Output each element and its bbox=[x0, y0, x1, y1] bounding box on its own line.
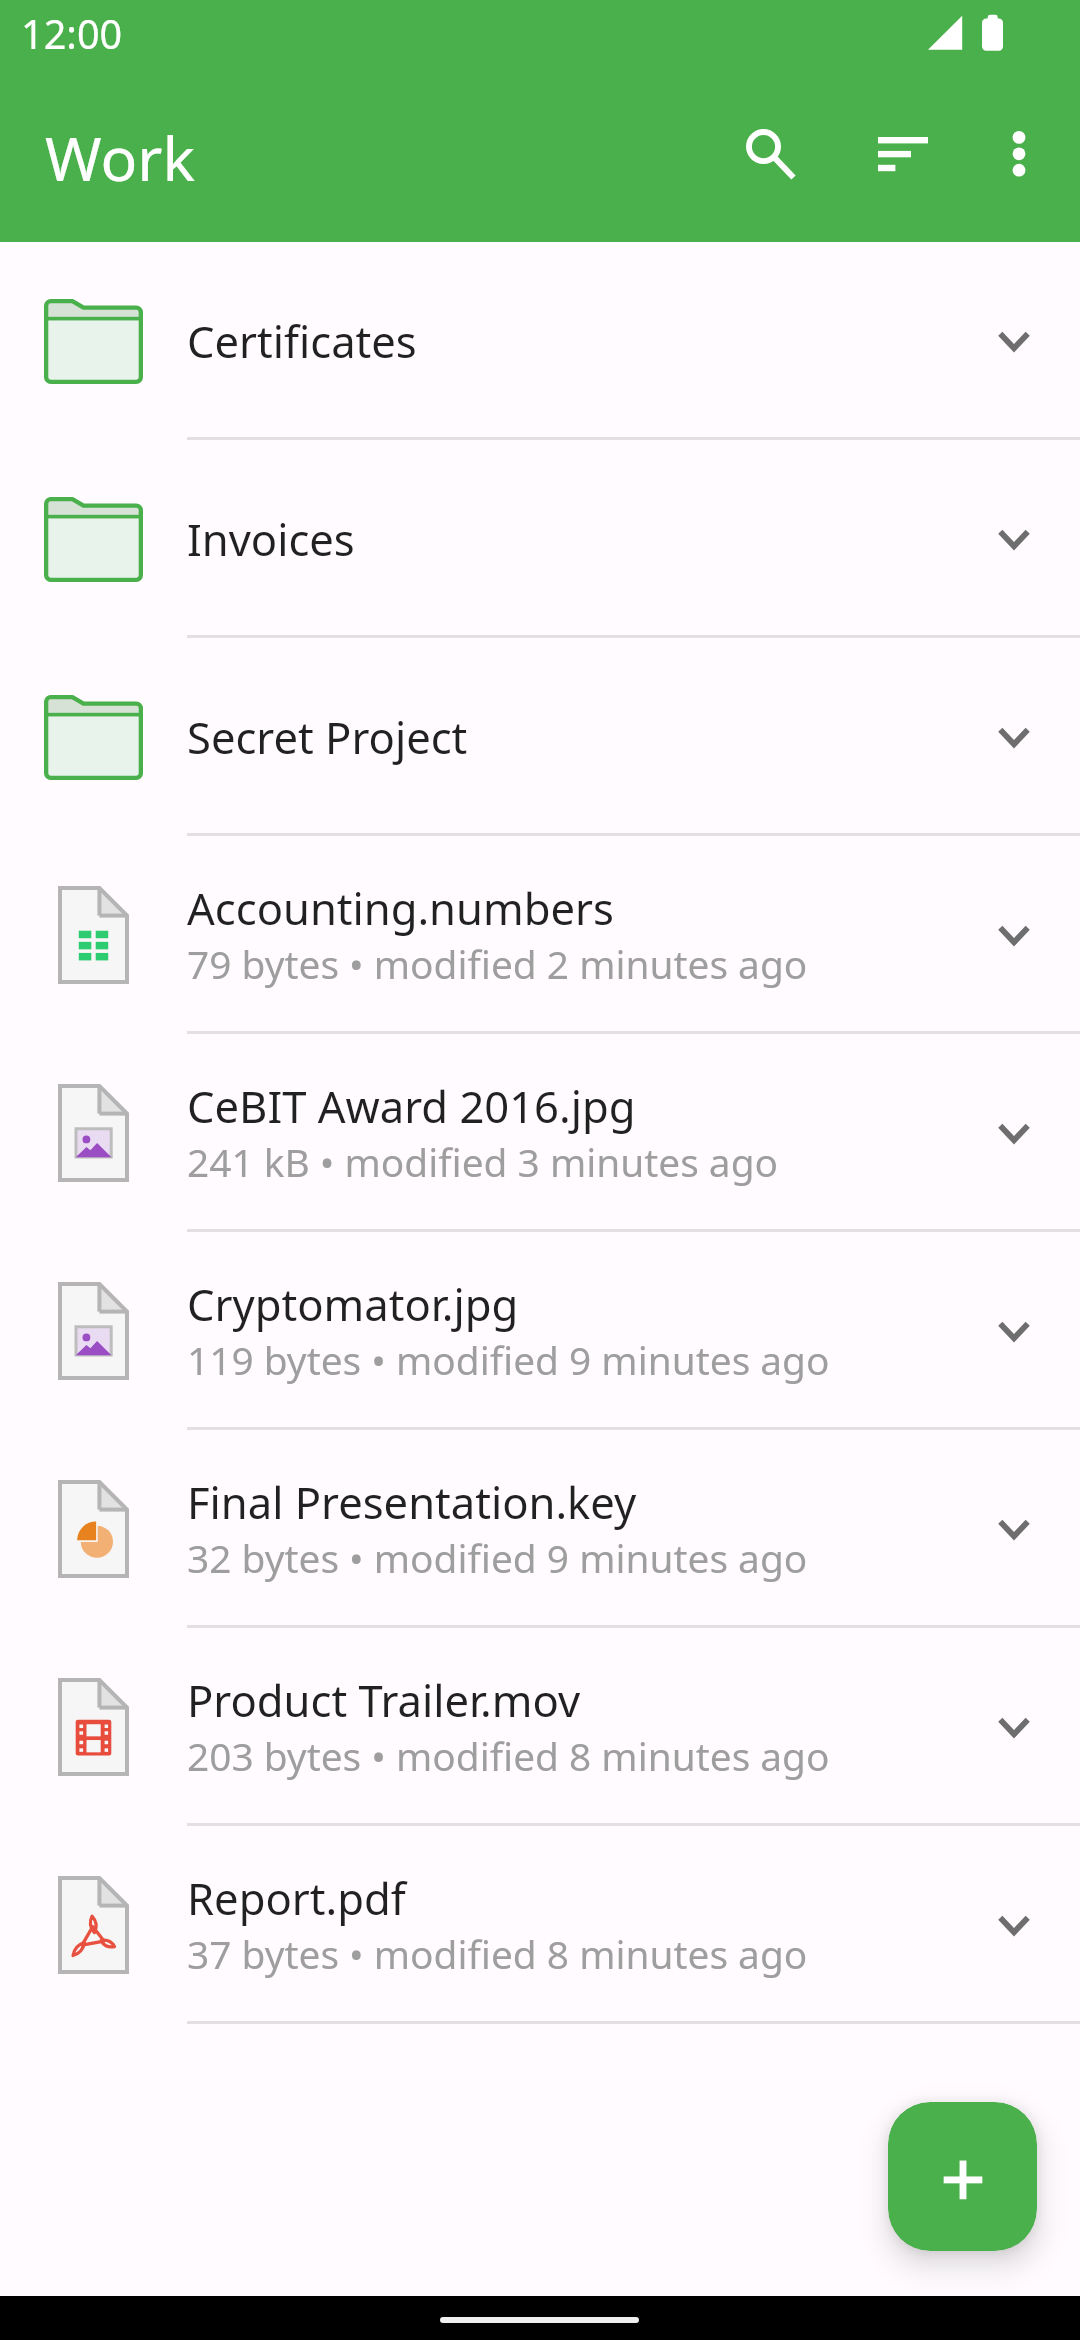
staticText: 32 bytes • modified 9 minutes ago bbox=[187, 1531, 808, 1584]
staticText: Work bbox=[45, 116, 195, 199]
staticText: 79 bytes • modified 2 minutes ago bbox=[187, 937, 808, 990]
staticText: Product Trailer.mov bbox=[187, 1670, 581, 1729]
staticText: Certificates bbox=[187, 311, 954, 370]
staticText: 37 bytes • modified 8 minutes ago bbox=[187, 1927, 808, 1980]
button[interactable]: Certificates bbox=[0, 242, 1080, 440]
staticText: Report.pdf bbox=[187, 1868, 406, 1927]
button[interactable]: Report.pdf bbox=[0, 1826, 1080, 2024]
button[interactable]: Show actions bbox=[954, 1232, 1074, 1430]
button[interactable]: Final Presentation.key bbox=[0, 1430, 1080, 1628]
button[interactable]: Show actions bbox=[954, 242, 1074, 440]
button[interactable]: Show actions bbox=[954, 1628, 1074, 1826]
staticText: 203 bytes • modified 8 minutes ago bbox=[187, 1729, 830, 1782]
button[interactable]: Secret Project bbox=[0, 638, 1080, 836]
button[interactable]: Show actions bbox=[954, 1430, 1074, 1628]
button[interactable]: Product Trailer.mov bbox=[0, 1628, 1080, 1826]
button[interactable]: Show actions bbox=[954, 1034, 1074, 1232]
staticText: Secret Project bbox=[187, 707, 954, 766]
staticText: Final Presentation.key bbox=[187, 1472, 637, 1531]
button[interactable]: Accounting.numbers bbox=[0, 836, 1080, 1034]
button[interactable]: Search bbox=[698, 72, 842, 240]
staticText: Cryptomator.jpg bbox=[187, 1274, 519, 1333]
button[interactable]: Cryptomator.jpg bbox=[0, 1232, 1080, 1430]
staticText: Invoices bbox=[187, 509, 954, 568]
button[interactable]: CeBIT Award 2016.jpg bbox=[0, 1034, 1080, 1232]
button[interactable]: Show actions bbox=[954, 440, 1074, 638]
staticText: 12:00 bbox=[21, 7, 123, 61]
button[interactable]: Sort bbox=[831, 72, 975, 240]
staticText: 241 kB • modified 3 minutes ago bbox=[187, 1135, 779, 1188]
button[interactable]: Show actions bbox=[954, 836, 1074, 1034]
button[interactable]: More options bbox=[965, 72, 1073, 240]
staticText: CeBIT Award 2016.jpg bbox=[187, 1076, 636, 1135]
staticText: Accounting.numbers bbox=[187, 878, 614, 937]
button[interactable]: Show actions bbox=[954, 638, 1074, 836]
button[interactable]: Add bbox=[888, 2102, 1037, 2251]
button[interactable]: Show actions bbox=[954, 1826, 1074, 2024]
staticText: 119 bytes • modified 9 minutes ago bbox=[187, 1333, 830, 1386]
button[interactable]: Invoices bbox=[0, 440, 1080, 638]
